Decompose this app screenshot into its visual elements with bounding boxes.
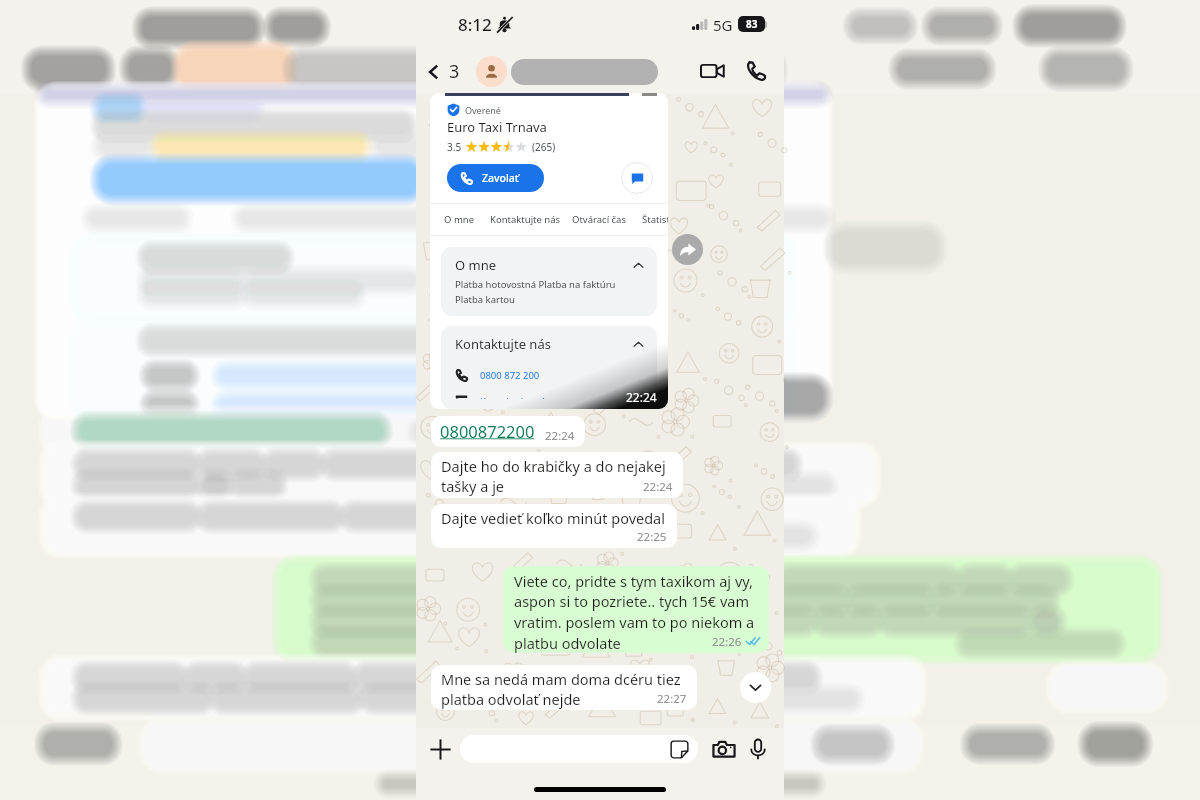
staticText: Kontaktujte nás [455,335,551,353]
button[interactable]: Dajte ho do krabičky a do nejakej tašky … [431,452,683,498]
button[interactable]: Kontaktujte nás [441,326,657,409]
button[interactable]: Viete co, pridte s tym taxikom aj vy, as… [503,566,769,653]
staticText: 3 [449,59,460,84]
button[interactable]: Camera [709,734,739,764]
staticText: 22:24 [626,389,657,405]
button[interactable] [476,56,694,87]
button[interactable]: O mne [444,213,475,226]
staticText: O mne [455,256,497,274]
button[interactable]: O mne [441,247,657,316]
staticText: Overené [465,104,501,116]
button[interactable]: Kontaktujte nás [490,213,561,226]
staticText: 22:24 [545,428,575,444]
button[interactable]: Voice call [738,53,774,89]
button[interactable]: Štatist [642,213,668,226]
staticText: 22:25 [637,529,667,545]
button[interactable] [460,735,698,763]
other: Back [424,62,444,82]
button[interactable]: Mne sa nedá mam doma dcéru tiez platba o… [431,665,697,710]
button[interactable]: Overené [430,93,668,409]
button[interactable]: Message [621,162,653,194]
staticText: 83 [746,17,758,31]
staticText: 22:27 [657,691,687,707]
button[interactable]: 0800872200 [431,416,585,447]
staticText: Platba hotovostná Platba na faktúru Plat… [455,278,616,306]
staticText: Euro Taxi Trnava [447,118,547,136]
staticText: 5G [713,15,733,35]
button[interactable]: Scroll to bottom [740,672,771,703]
button[interactable]: Back [416,59,464,84]
staticText: 0800 872 200 [480,369,540,382]
button[interactable]: Voice message [745,736,771,762]
staticText: 8:12 [458,13,492,36]
button[interactable]: Dajte vedieť koľko minút povedal [431,504,677,548]
button[interactable]: Forward [672,234,703,265]
staticText: Dajte ho do krabičky a do nejakej tašky … [441,456,666,497]
staticText: Viete co, pridte s tym taxikom aj vy, as… [514,571,755,653]
staticText: Kontaktujte nás [480,395,551,399]
button[interactable]: Attach [423,732,457,766]
staticText: 3.5 [447,140,462,154]
staticText: (265) [532,140,556,154]
staticText: 22:24 [643,479,673,495]
staticText: 0800872200 [440,420,535,442]
staticText: 22:26 [712,634,742,650]
staticText: Mne sa nedá mam doma dcéru tiez platba o… [441,669,681,710]
button[interactable]: Otvárací čas [572,213,626,226]
staticText: Dajte vedieť koľko minút povedal [441,508,665,528]
staticText: Zavolať [482,171,519,185]
button[interactable]: Zavolať [447,164,544,192]
button[interactable]: Video call [694,53,730,89]
